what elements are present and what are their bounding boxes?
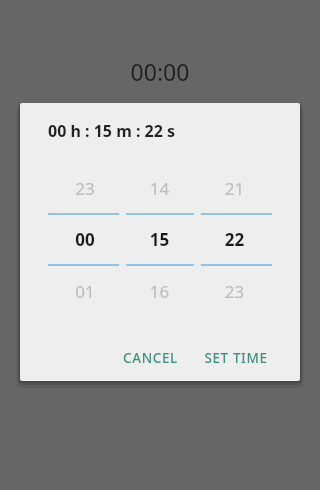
staticText: 23 <box>197 280 272 303</box>
staticText: 21 <box>197 177 272 200</box>
staticText: 00 <box>48 228 122 251</box>
button[interactable]: CANCEL <box>115 342 186 374</box>
staticText: SET TIME <box>204 349 268 367</box>
staticText: 01 <box>48 280 122 303</box>
staticText: CANCEL <box>123 349 178 367</box>
staticText: 23 <box>48 177 122 200</box>
staticText: 22 <box>197 228 272 251</box>
button[interactable]: Hours <box>48 162 122 318</box>
staticText: 16 <box>122 280 197 303</box>
staticText: 14 <box>122 177 197 200</box>
staticText: 15 <box>122 228 197 251</box>
staticText: 00 h : 15 m : 22 s <box>48 120 300 142</box>
staticText: 00:00 <box>0 56 320 87</box>
button[interactable]: Seconds <box>197 162 272 318</box>
button[interactable]: Minutes <box>122 162 197 318</box>
button[interactable]: SET TIME <box>196 342 276 374</box>
